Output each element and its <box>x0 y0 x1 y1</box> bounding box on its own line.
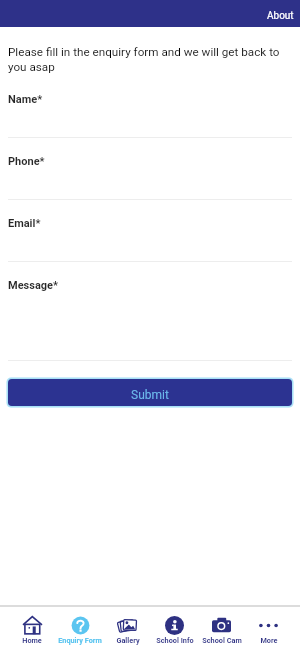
staticText: Please fill in the enquiry form and we w… <box>8 45 292 73</box>
button[interactable]: Enquiry Form <box>56 616 104 649</box>
button[interactable]: School Info <box>151 616 198 649</box>
button[interactable]: Phone* <box>0 155 300 217</box>
staticText: Enquiry Form <box>58 636 102 645</box>
button[interactable]: Gallery <box>104 616 151 649</box>
button[interactable]: Name* <box>0 93 300 155</box>
staticText: School Info <box>156 636 194 645</box>
staticText: Submit <box>131 388 169 402</box>
staticText: School Cam <box>202 636 242 645</box>
button[interactable]: Message* <box>0 279 300 361</box>
staticText: Home <box>22 636 42 645</box>
button[interactable]: Home <box>8 616 56 649</box>
button[interactable]: Submit <box>8 379 292 406</box>
staticText: Message* <box>8 279 59 292</box>
staticText: Phone* <box>8 155 45 168</box>
staticText: Email* <box>8 217 41 230</box>
button[interactable]: About <box>259 3 300 25</box>
staticText: Name* <box>8 93 43 106</box>
button[interactable]: School Cam <box>198 616 245 649</box>
button[interactable]: More <box>245 616 292 649</box>
button[interactable]: Email* <box>0 217 300 279</box>
staticText: More <box>260 636 278 645</box>
staticText: About <box>267 10 294 22</box>
staticText: Gallery <box>116 636 140 645</box>
